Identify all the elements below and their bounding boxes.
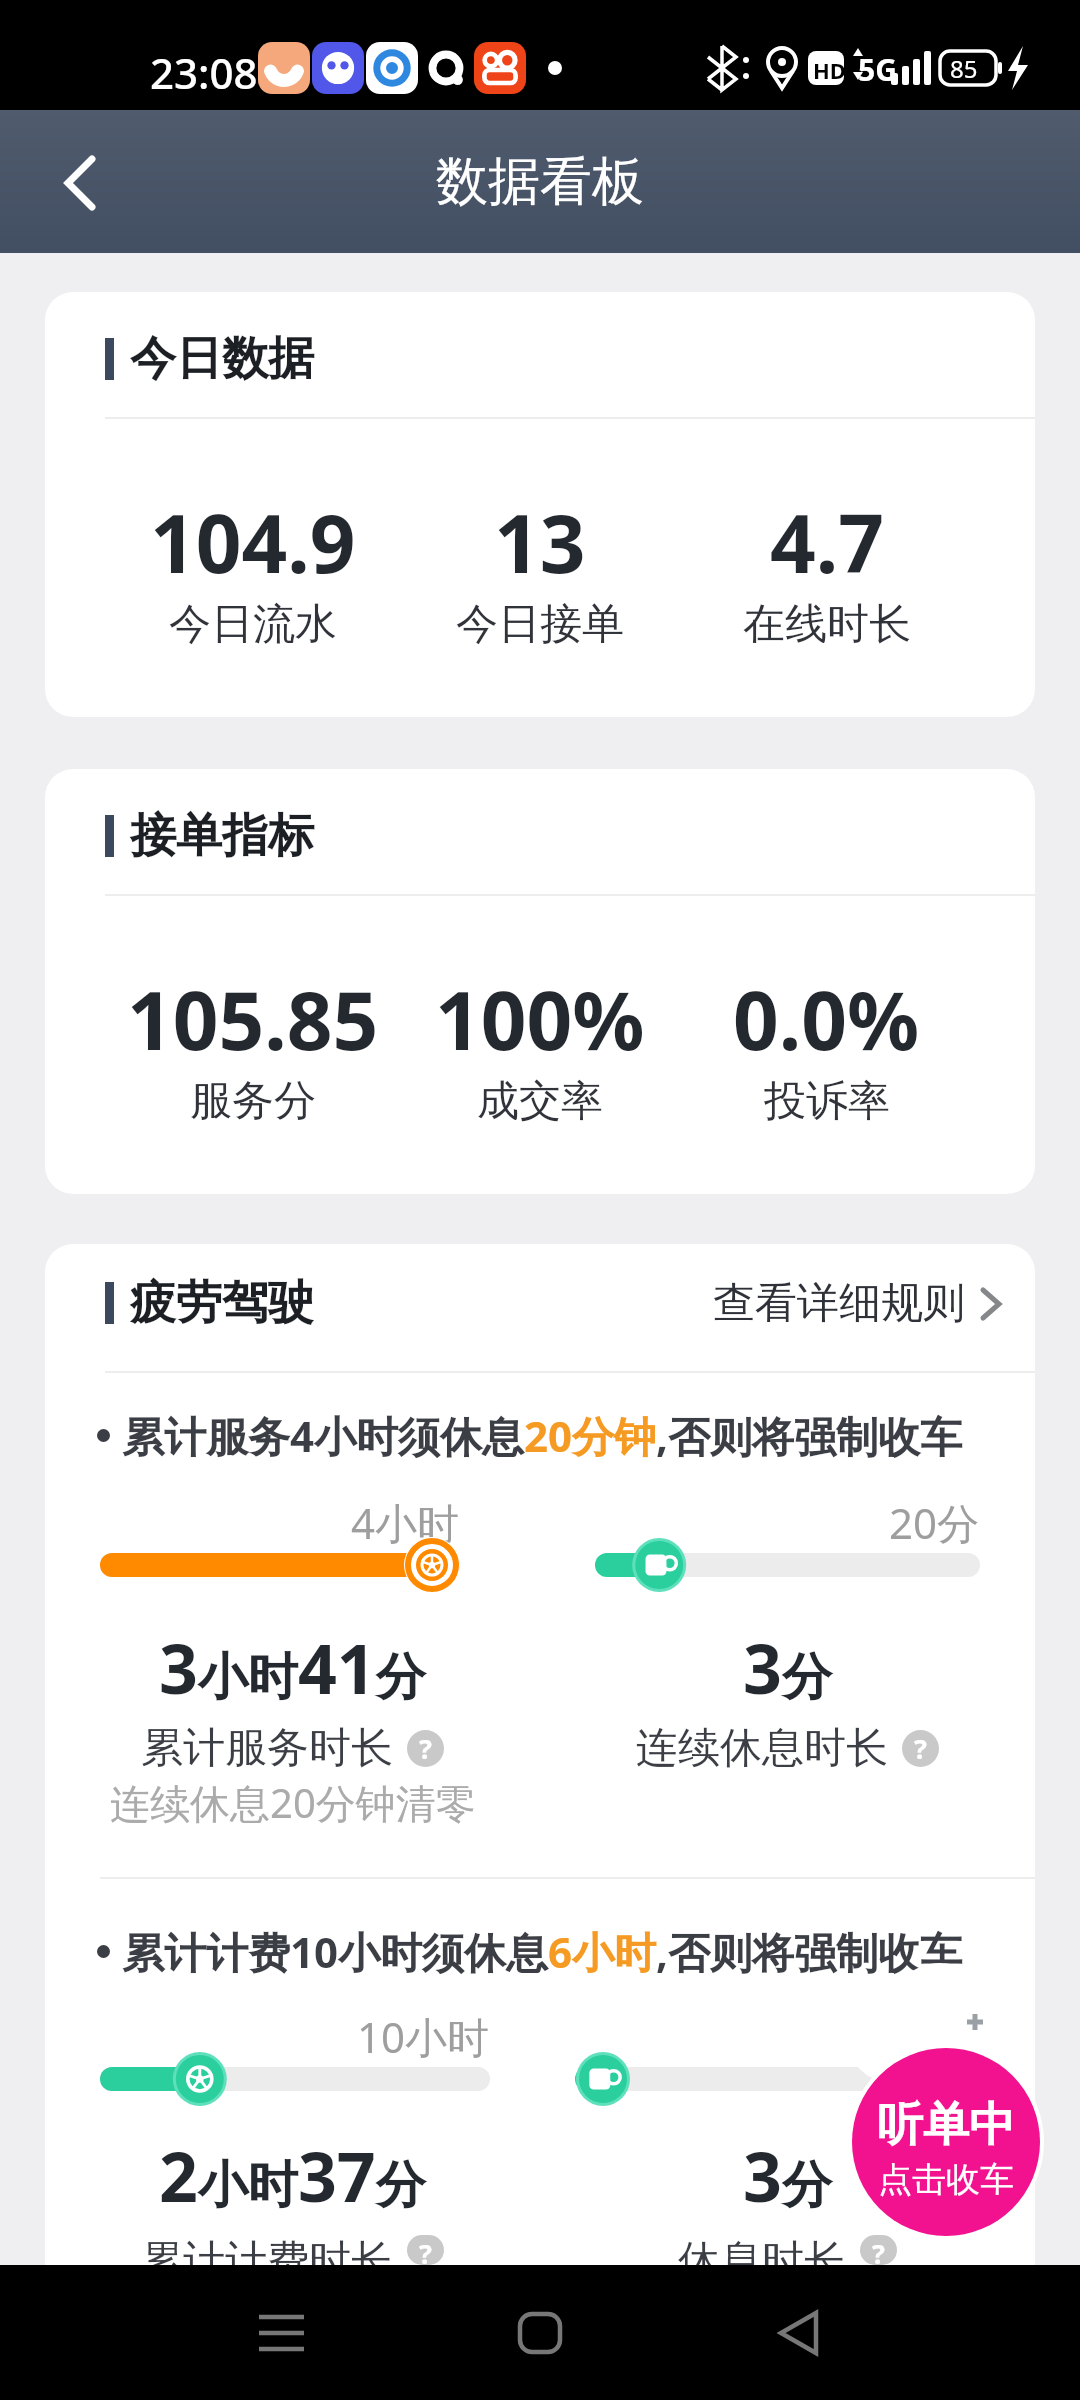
button[interactable] bbox=[0, 2265, 360, 2400]
button[interactable] bbox=[232, 2300, 332, 2400]
staticText: ? bbox=[914, 1730, 927, 1767]
staticText: 3小时41分 bbox=[159, 1621, 426, 1714]
button[interactable]: ? bbox=[407, 1730, 444, 1767]
button[interactable] bbox=[50, 153, 110, 213]
button[interactable] bbox=[360, 2265, 720, 2400]
staticText: 今日数据 bbox=[130, 330, 314, 388]
staticText: 3分 bbox=[743, 1621, 832, 1714]
staticText: 105.85 bbox=[127, 964, 379, 1073]
staticText: 累计计费时长 bbox=[141, 2235, 393, 2265]
staticText: 在线时长 bbox=[743, 598, 911, 651]
staticText: 疲劳驾驶 bbox=[130, 1274, 314, 1332]
staticText: 数据看板 bbox=[436, 149, 644, 215]
staticText: 85 bbox=[950, 52, 978, 85]
staticText: 0.0% bbox=[733, 964, 920, 1073]
staticText: 今日接单 bbox=[456, 598, 624, 651]
staticText: 累计计费10小时须休息6小时,否则将强制收车 bbox=[122, 1923, 963, 1980]
staticText: 点击收车 bbox=[878, 2158, 1014, 2201]
staticText: 今日流水 bbox=[169, 598, 337, 651]
staticText: 104.9 bbox=[150, 487, 356, 596]
staticText: 投诉率 bbox=[764, 1075, 890, 1128]
button[interactable]: ? bbox=[860, 2235, 897, 2265]
staticText: 听单中 bbox=[877, 2096, 1015, 2154]
staticText: ? bbox=[419, 1730, 432, 1767]
staticText: 23:08 bbox=[150, 44, 258, 101]
staticText: 5G bbox=[858, 49, 897, 90]
staticText: 累计服务时长 bbox=[141, 1722, 393, 1775]
staticText: 接单指标 bbox=[130, 807, 314, 865]
staticText: 2小时37分 bbox=[159, 2129, 426, 2222]
staticText: 20分 bbox=[889, 1494, 980, 1551]
staticText: 3分 bbox=[743, 2129, 832, 2222]
button[interactable]: 查看详细规则 bbox=[713, 1277, 1005, 1330]
staticText: 10小时 bbox=[357, 2008, 490, 2065]
staticText: 100% bbox=[435, 964, 645, 1073]
staticText: 4小时 bbox=[351, 1494, 460, 1551]
staticText: 4.7 bbox=[770, 487, 884, 596]
button[interactable] bbox=[720, 2265, 1080, 2400]
staticText: 连续休息20分钟清零 bbox=[110, 1775, 476, 1830]
staticText: 查看详细规则 bbox=[713, 1277, 965, 1330]
staticText: 6小时 bbox=[871, 2008, 980, 2065]
staticText: 13 bbox=[494, 487, 586, 596]
staticText: 连续休息时长 bbox=[636, 1722, 888, 1775]
staticText: ? bbox=[872, 2235, 885, 2265]
staticText: ? bbox=[419, 2235, 432, 2265]
staticText: 服务分 bbox=[190, 1075, 316, 1128]
staticText: 累计服务4小时须休息20分钟,否则将强制收车 bbox=[122, 1407, 963, 1464]
staticText: 休息时长 bbox=[678, 2235, 846, 2265]
button[interactable]: 听单中 bbox=[852, 2048, 1040, 2236]
button[interactable]: ? bbox=[407, 2235, 444, 2265]
button[interactable]: ? bbox=[902, 1730, 939, 1767]
staticText: HD bbox=[813, 55, 846, 85]
staticText: 成交率 bbox=[477, 1075, 603, 1128]
